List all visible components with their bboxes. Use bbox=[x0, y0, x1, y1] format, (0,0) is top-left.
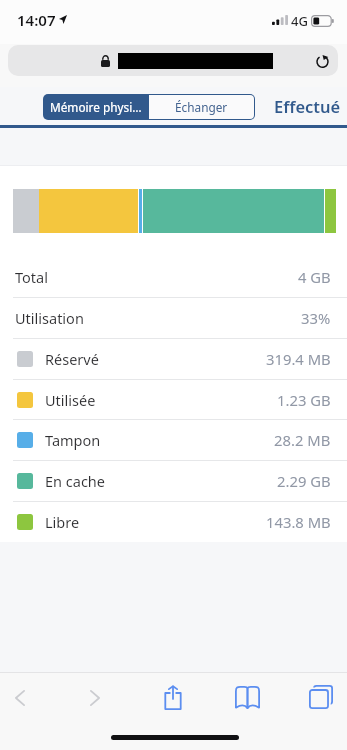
button[interactable]: Bookmarks bbox=[224, 673, 270, 722]
staticText: 4 GB bbox=[298, 267, 331, 287]
staticText: 14:07 bbox=[17, 10, 56, 30]
staticText: Libre bbox=[45, 512, 80, 532]
staticText: Total bbox=[15, 267, 48, 287]
button[interactable]: Reload bbox=[307, 45, 338, 76]
staticText: Effectué bbox=[274, 95, 341, 117]
button[interactable]: Mémoire physi… bbox=[43, 94, 149, 120]
button[interactable]: Effectué bbox=[274, 95, 341, 117]
staticText: 143.8 MB bbox=[266, 512, 331, 532]
staticText: 319.4 MB bbox=[266, 349, 331, 369]
button[interactable]: Reload bbox=[8, 45, 338, 76]
staticText: 28.2 MB bbox=[274, 430, 331, 450]
button[interactable]: En cache bbox=[0, 461, 347, 502]
button[interactable]: Utilisée bbox=[0, 380, 347, 420]
staticText: 1.23 GB bbox=[277, 390, 331, 410]
staticText: 4G bbox=[291, 12, 308, 30]
staticText: 2.29 GB bbox=[277, 471, 331, 491]
button[interactable]: Tampon bbox=[0, 420, 347, 461]
button[interactable]: Total bbox=[0, 256, 347, 298]
staticText: Mémoire physi… bbox=[50, 99, 142, 115]
button[interactable]: Forward bbox=[72, 673, 118, 722]
staticText: En cache bbox=[45, 471, 105, 491]
staticText: Réservé bbox=[45, 349, 99, 369]
staticText: Échanger bbox=[175, 99, 228, 115]
staticText: 33% bbox=[301, 308, 331, 328]
button[interactable]: Share bbox=[150, 673, 196, 722]
button[interactable]: Tabs bbox=[298, 673, 344, 722]
button[interactable]: Échanger bbox=[149, 95, 254, 119]
staticText: Utilisation bbox=[15, 308, 84, 328]
staticText: Utilisée bbox=[45, 390, 96, 410]
staticText: Tampon bbox=[45, 430, 101, 450]
button[interactable]: Back bbox=[0, 673, 43, 722]
button[interactable]: Libre bbox=[0, 502, 347, 542]
button[interactable]: Utilisation bbox=[0, 298, 347, 339]
button[interactable]: Réservé bbox=[0, 339, 347, 380]
